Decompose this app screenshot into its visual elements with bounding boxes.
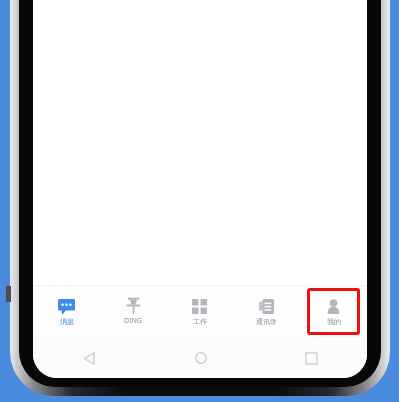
button[interactable]: Home <box>145 338 256 378</box>
button[interactable]: 通讯录 <box>240 288 293 335</box>
staticText: 工作 <box>193 317 207 326</box>
button[interactable]: 工作 <box>173 288 226 335</box>
staticText: 通讯录 <box>256 317 277 326</box>
staticText: DING <box>124 316 142 326</box>
button[interactable]: Back <box>33 338 145 378</box>
button[interactable]: 我的 <box>310 291 357 332</box>
button[interactable]: DING <box>106 288 159 335</box>
button[interactable]: 消息 <box>40 288 92 335</box>
button[interactable]: Recents <box>256 338 367 378</box>
staticText: 消息 <box>60 317 74 326</box>
staticText: 我的 <box>327 317 341 326</box>
